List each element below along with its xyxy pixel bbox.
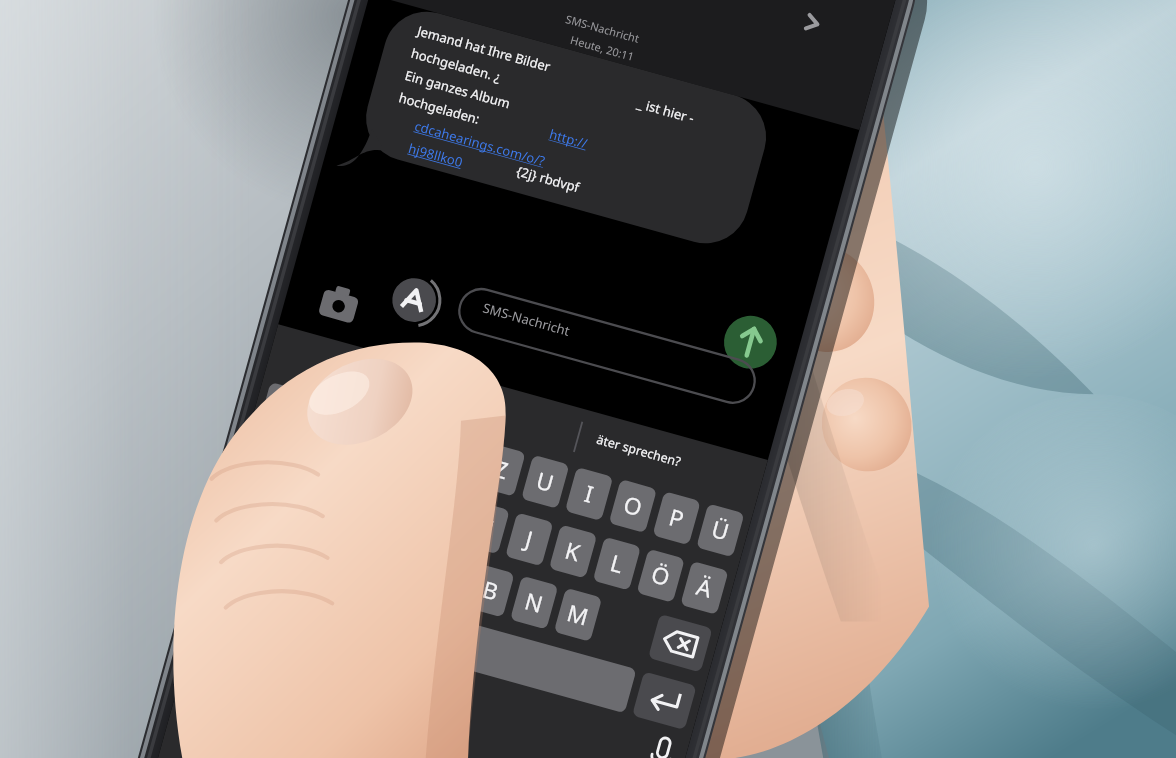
- button[interactable]: Messages conversation on phone held in h…: [0, 0, 1176, 758]
